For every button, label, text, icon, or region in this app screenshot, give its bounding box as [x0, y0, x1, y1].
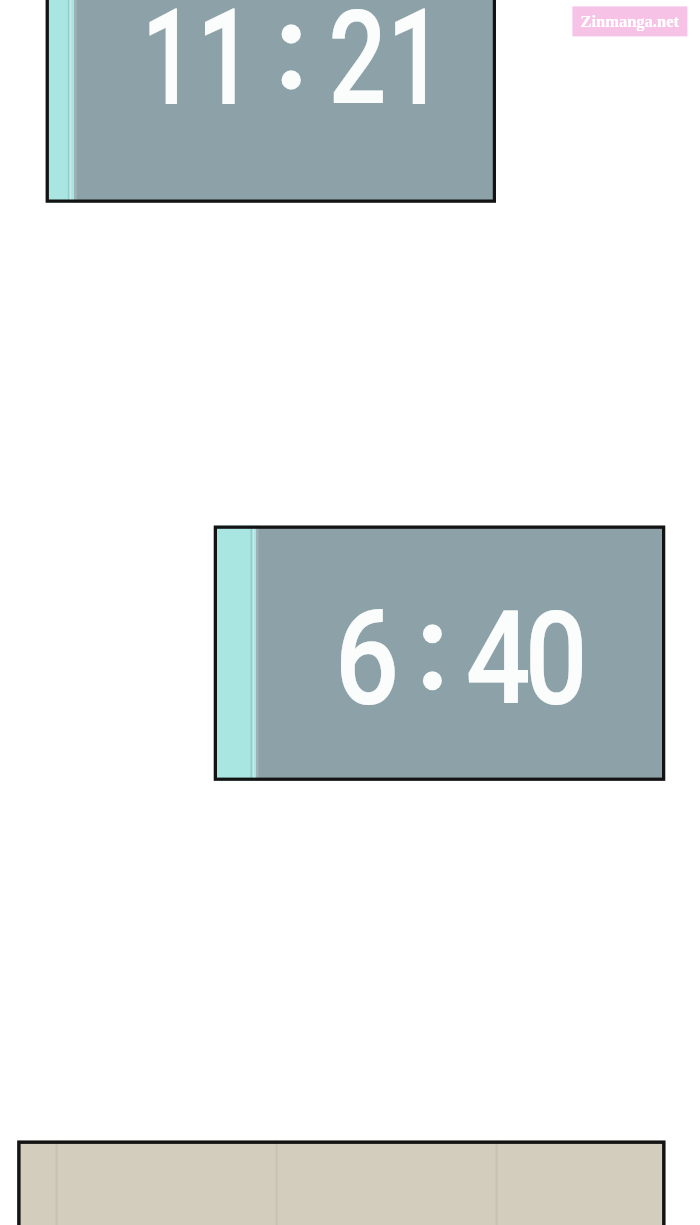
- button[interactable]: Zinmanga.net: [572, 6, 688, 37]
